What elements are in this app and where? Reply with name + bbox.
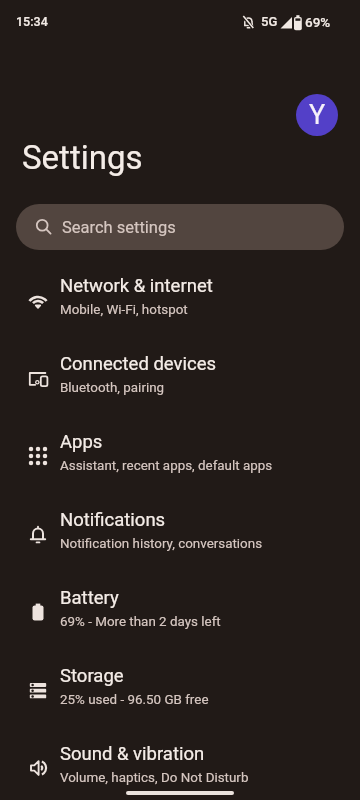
staticText: Assistant, recent apps, default apps [60,458,273,474]
staticText: 69% [305,14,331,30]
staticText: 25% used - 96.50 GB free [60,692,209,708]
staticText: Storage [60,665,124,687]
staticText: Notification history, conversations [60,536,263,552]
staticText: Sound & vibration [60,743,205,765]
staticText: Apps [60,431,103,453]
staticText: Battery [60,587,119,609]
staticText: 69% - More than 2 days left [60,614,221,630]
staticText: Settings [22,138,143,177]
staticText: Mobile, Wi-Fi, hotspot [60,302,188,318]
staticText: Bluetooth, pairing [60,380,165,396]
staticText: Y [309,99,326,131]
staticText: Notifications [60,509,166,531]
staticText: 5G [261,14,278,29]
staticText: 15:34 [16,14,48,29]
staticText: Network & internet [60,275,213,297]
staticText: Connected devices [60,353,217,375]
staticText: Search settings [62,218,176,237]
staticText: Volume, haptics, Do Not Disturb [60,770,249,786]
